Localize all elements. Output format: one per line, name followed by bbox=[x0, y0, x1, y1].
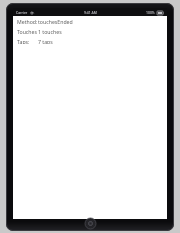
button[interactable]: Home bbox=[85, 218, 96, 229]
staticText: 9:41 AM bbox=[84, 10, 97, 15]
staticText: touchesEnded bbox=[38, 18, 73, 24]
staticText: Touches: bbox=[17, 28, 38, 34]
button[interactable]: Taps: bbox=[17, 38, 167, 44]
staticText: 100% bbox=[146, 10, 155, 15]
staticText: Carrier bbox=[16, 10, 28, 15]
staticText: Method: bbox=[17, 18, 38, 24]
staticText: Taps: bbox=[17, 38, 30, 44]
button[interactable]: Method: bbox=[17, 18, 167, 24]
button[interactable]: Touches: bbox=[17, 28, 167, 34]
staticText: 1 touches bbox=[38, 28, 62, 34]
staticText: 7 taps bbox=[38, 38, 53, 44]
